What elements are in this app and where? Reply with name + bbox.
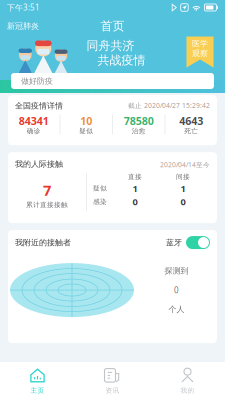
staticText: 探测到 [164,266,188,276]
staticText: 蓝牙 [166,238,182,247]
staticText: 确诊 [27,127,41,135]
staticText: 同舟共济 [86,38,134,53]
staticText: 全国疫情详情 [15,101,63,111]
staticText: 10 [80,114,92,128]
staticText: 0 [180,195,185,208]
staticText: 首页 [100,19,124,33]
staticText: 观察 [192,48,208,58]
button[interactable]: 资讯 [75,362,150,400]
staticText: 0 [132,195,137,208]
staticText: 疑似 [79,127,93,135]
staticText: 死亡 [184,127,198,135]
staticText: 共战疫情 [97,53,145,68]
staticText: 间接 [176,173,190,181]
staticText: 我的 [180,386,194,395]
button[interactable]: 新冠肺炎 [0,17,46,35]
staticText: 疑似 [93,184,107,192]
staticText: 下午3:51 [7,2,40,13]
staticText: 治愈 [132,127,146,135]
staticText: 累计直接接触 [26,201,68,209]
staticText: 4643 [179,114,203,128]
staticText: 资讯 [105,386,119,395]
staticText: 医学 [192,39,208,48]
staticText: 我附近的接触者 [15,238,71,247]
staticText: 0 [174,285,179,295]
button[interactable] [186,236,210,249]
staticText: 截止 2020/04/27 15:29:42 [128,101,210,110]
button[interactable]: 我的 [150,362,225,400]
staticText: 做好防疫 [21,76,53,86]
staticText: 1 [132,182,137,194]
button[interactable]: 做好防疫 [11,73,214,89]
staticText: 新冠肺炎 [7,21,39,31]
button[interactable]: 主页 [0,362,75,400]
staticText: 7 [43,180,51,200]
staticText: 感染 [93,198,107,206]
staticText: 直接 [128,173,142,181]
staticText: 1 [180,182,185,194]
staticText: 2020/04/14至今 [160,160,210,169]
staticText: 个人 [168,304,184,314]
staticText: 我的人际接触 [15,159,63,169]
staticText: 主页 [30,386,44,395]
staticText: 78580 [124,114,154,128]
staticText: 84341 [19,114,49,128]
